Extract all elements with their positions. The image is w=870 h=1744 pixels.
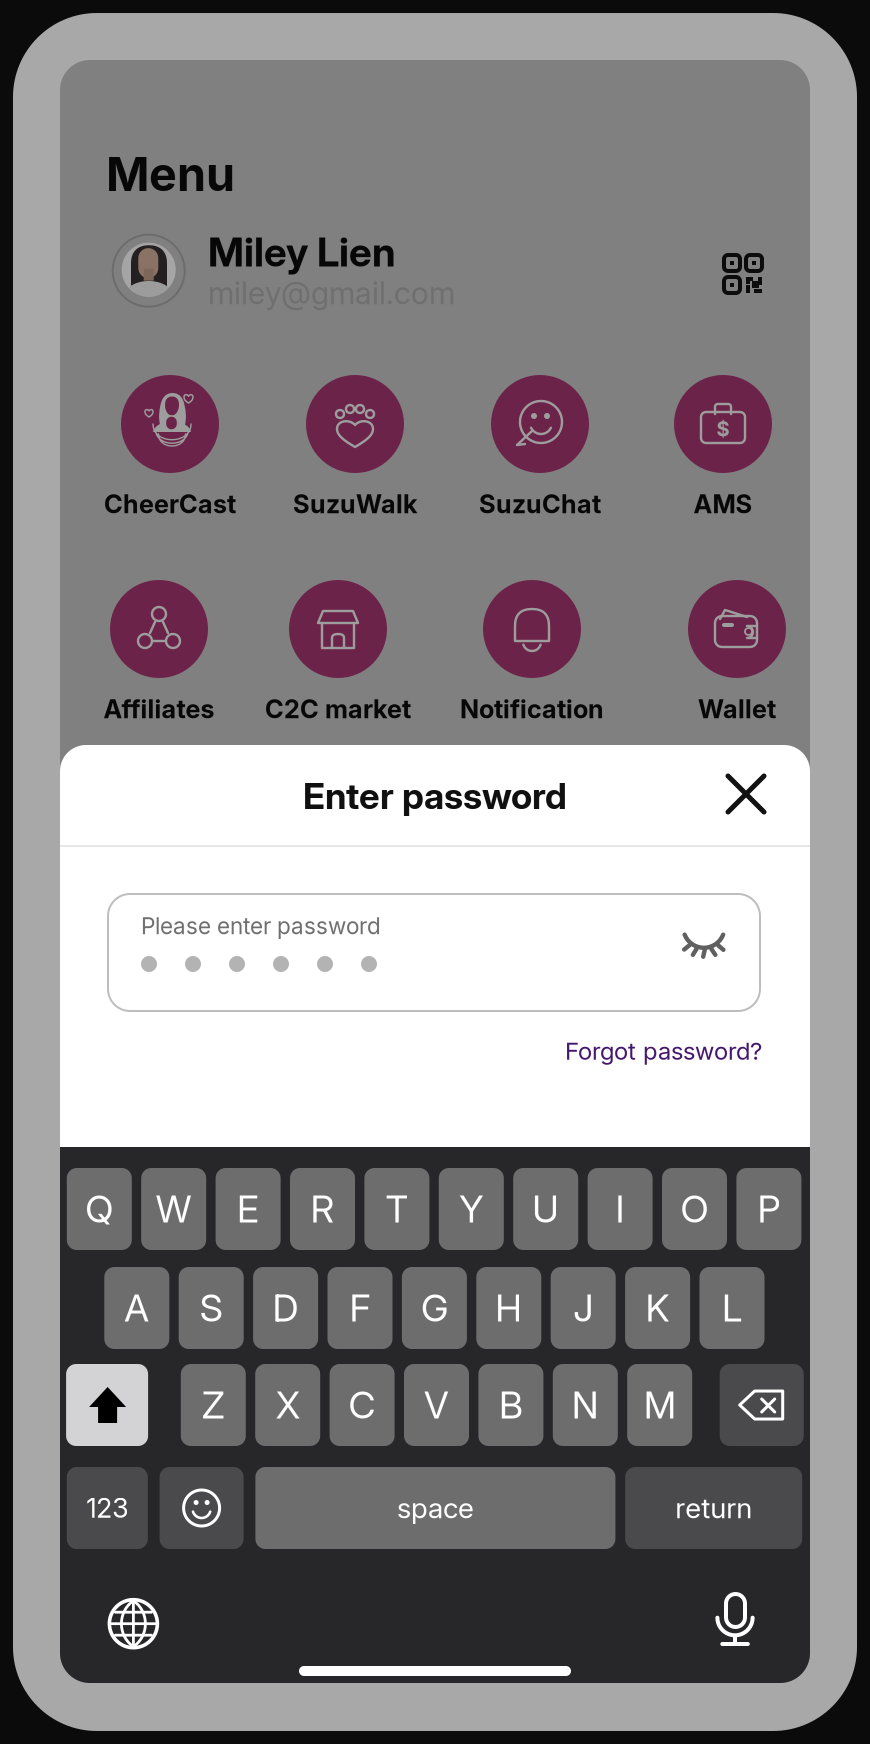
button[interactable]: C	[330, 1364, 395, 1446]
staticText: AMS	[693, 489, 752, 519]
button[interactable]: Dictate	[710, 1590, 760, 1648]
button[interactable]: SuzuChat	[491, 375, 589, 473]
staticText: N	[572, 1382, 599, 1428]
staticText: S	[200, 1285, 223, 1331]
staticText: Forgot password?	[565, 1036, 762, 1065]
button[interactable]: space	[255, 1467, 615, 1549]
button[interactable]: T	[364, 1168, 429, 1250]
staticText: SuzuWalk	[293, 489, 417, 519]
staticText: Affiliates	[103, 694, 214, 724]
button[interactable]: Y	[439, 1168, 504, 1250]
staticText: Miley Lien	[208, 228, 396, 276]
staticText: Enter password	[303, 774, 567, 818]
button[interactable]: Wallet	[688, 580, 786, 678]
button[interactable]: G	[402, 1267, 467, 1349]
button[interactable]: Close	[706, 754, 786, 834]
button[interactable]: return	[625, 1467, 802, 1549]
staticText: return	[675, 1491, 752, 1525]
button[interactable]: Switch keyboard	[109, 1600, 157, 1648]
button[interactable]: E	[216, 1168, 281, 1250]
button[interactable]: C2C market	[289, 580, 387, 678]
button[interactable]: W	[141, 1168, 206, 1250]
staticText: $	[716, 417, 729, 441]
button[interactable]: Shift	[66, 1364, 148, 1446]
button[interactable]: R	[290, 1168, 355, 1250]
button[interactable]: X	[255, 1364, 320, 1446]
staticText: C	[349, 1382, 376, 1428]
staticText: C2C market	[265, 694, 411, 724]
staticText: A	[124, 1285, 149, 1331]
staticText: Q	[85, 1186, 113, 1232]
button[interactable]: Scan QR code	[724, 255, 762, 293]
staticText: B	[499, 1382, 523, 1428]
button[interactable]: Profile photo	[112, 235, 185, 307]
staticText: Wallet	[698, 694, 776, 724]
button[interactable]: H	[476, 1267, 541, 1349]
staticText: T	[385, 1186, 408, 1232]
button[interactable]: Forgot password?	[565, 1036, 762, 1065]
button[interactable]: S	[179, 1267, 244, 1349]
staticText: Z	[202, 1382, 225, 1428]
button[interactable]: F	[327, 1267, 392, 1349]
staticText: Y	[459, 1186, 483, 1232]
button[interactable]: M	[627, 1364, 692, 1446]
button[interactable]: I	[588, 1168, 653, 1250]
staticText: E	[237, 1186, 259, 1232]
button[interactable]: Affiliates	[110, 580, 208, 678]
button[interactable]: Notification	[483, 580, 581, 678]
button[interactable]: Delete	[720, 1364, 804, 1446]
staticText: I	[616, 1186, 625, 1232]
button[interactable]: L	[699, 1267, 764, 1349]
staticText: H	[495, 1285, 522, 1331]
staticText: 123	[86, 1492, 128, 1524]
button[interactable]: 123	[67, 1467, 148, 1549]
staticText: Please enter password	[141, 912, 381, 940]
staticText: L	[722, 1285, 742, 1331]
staticText: R	[310, 1186, 334, 1232]
staticText: W	[156, 1186, 192, 1232]
staticText: F	[349, 1285, 370, 1331]
button[interactable]: K	[625, 1267, 690, 1349]
staticText: O	[680, 1186, 708, 1232]
button[interactable]: U	[513, 1168, 578, 1250]
staticText: M	[644, 1382, 676, 1428]
button[interactable]: V	[404, 1364, 469, 1446]
button[interactable]: D	[253, 1267, 318, 1349]
button[interactable]: O	[662, 1168, 727, 1250]
staticText: SuzuChat	[479, 489, 601, 519]
button[interactable]: J	[551, 1267, 616, 1349]
staticText: Menu	[106, 146, 235, 202]
staticText: G	[421, 1285, 448, 1331]
staticText: U	[532, 1186, 559, 1232]
button[interactable]: Emoji	[160, 1467, 244, 1549]
staticText: K	[646, 1285, 670, 1331]
staticText: J	[573, 1285, 593, 1331]
button[interactable]: B	[478, 1364, 543, 1446]
button[interactable]: Password	[108, 894, 760, 1011]
button[interactable]: Q	[67, 1168, 132, 1250]
button[interactable]: Z	[181, 1364, 246, 1446]
button[interactable]: N	[553, 1364, 618, 1446]
staticText: X	[276, 1382, 300, 1428]
button[interactable]: A	[104, 1267, 169, 1349]
button[interactable]: P	[736, 1168, 801, 1250]
button[interactable]: SuzuWalk	[306, 375, 404, 473]
staticText: P	[757, 1186, 780, 1232]
staticText: V	[424, 1382, 449, 1428]
staticText: space	[397, 1491, 474, 1525]
staticText: CheerCast	[104, 489, 236, 519]
button[interactable]: CheerCast	[121, 375, 219, 473]
staticText: D	[273, 1285, 299, 1331]
staticText: miley@gmail.com	[208, 274, 455, 311]
staticText: Notification	[460, 694, 604, 724]
button[interactable]: AMS	[674, 375, 772, 473]
